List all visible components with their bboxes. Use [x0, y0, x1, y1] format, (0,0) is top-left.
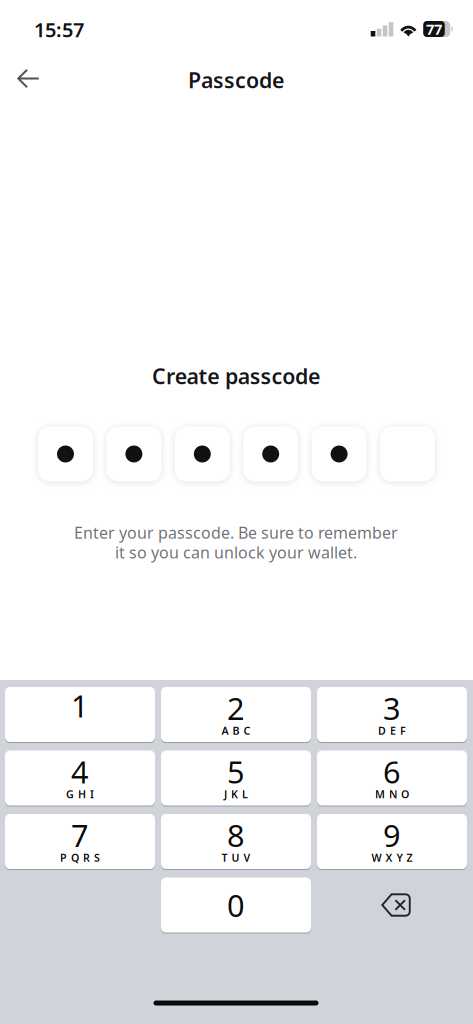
- staticText: 1: [71, 685, 89, 726]
- staticText: 4: [71, 751, 89, 792]
- button[interactable]: Back: [3, 55, 53, 101]
- button[interactable]: 5: [161, 750, 311, 805]
- staticText: 15:57: [34, 16, 84, 43]
- staticText: 5: [227, 751, 245, 792]
- staticText: W X Y Z: [371, 850, 412, 865]
- staticText: T U V: [221, 850, 250, 865]
- button[interactable]: 0: [161, 877, 311, 932]
- button[interactable]: 7: [5, 814, 155, 869]
- staticText: Passcode: [188, 66, 284, 94]
- staticText: M N O: [375, 787, 409, 801]
- staticText: 3: [383, 688, 401, 728]
- button[interactable]: 6: [317, 750, 467, 805]
- staticText: 77: [426, 19, 442, 39]
- staticText: D E F: [378, 723, 406, 738]
- staticText: J K L: [224, 787, 248, 801]
- staticText: Create passcode: [152, 362, 320, 390]
- button[interactable]: 9: [317, 814, 467, 869]
- staticText: 2: [227, 688, 245, 728]
- staticText: G H I: [66, 787, 94, 801]
- button[interactable]: 1: [5, 687, 155, 742]
- button[interactable]: 8: [161, 814, 311, 869]
- staticText: Enter your passcode. Be sure to remember: [74, 522, 398, 543]
- staticText: it so you can unlock your wallet.: [115, 542, 357, 563]
- staticText: 0: [227, 885, 245, 925]
- staticText: A B C: [221, 723, 250, 738]
- button[interactable]: 2: [161, 687, 311, 742]
- button[interactable]: Delete: [317, 877, 467, 932]
- staticText: 8: [227, 815, 245, 855]
- staticText: 6: [383, 751, 401, 792]
- staticText: 9: [383, 815, 401, 855]
- button[interactable]: 4: [5, 750, 155, 805]
- button[interactable]: 3: [317, 687, 467, 742]
- staticText: P Q R S: [60, 850, 100, 865]
- staticText: 7: [71, 815, 89, 855]
